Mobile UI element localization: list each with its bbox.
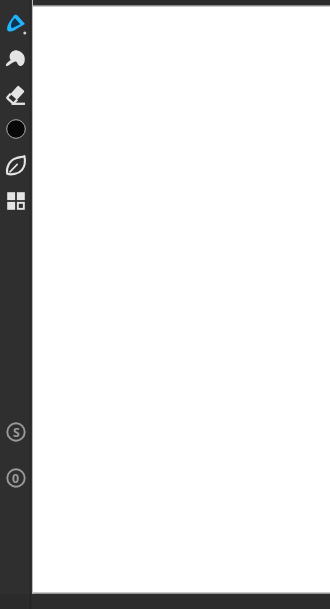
button[interactable]: Leaf (2, 151, 30, 179)
button[interactable]: Smudge (2, 45, 30, 73)
button[interactable]: Brush (2, 10, 30, 38)
button[interactable]: Brush size (2, 418, 30, 446)
button[interactable]: Colour (2, 115, 30, 143)
staticText: S (13, 424, 20, 441)
button[interactable]: Eraser (2, 81, 30, 109)
button[interactable]: Layers (2, 187, 30, 215)
staticText: 0 (12, 470, 20, 487)
button[interactable]: Opacity (2, 464, 30, 492)
